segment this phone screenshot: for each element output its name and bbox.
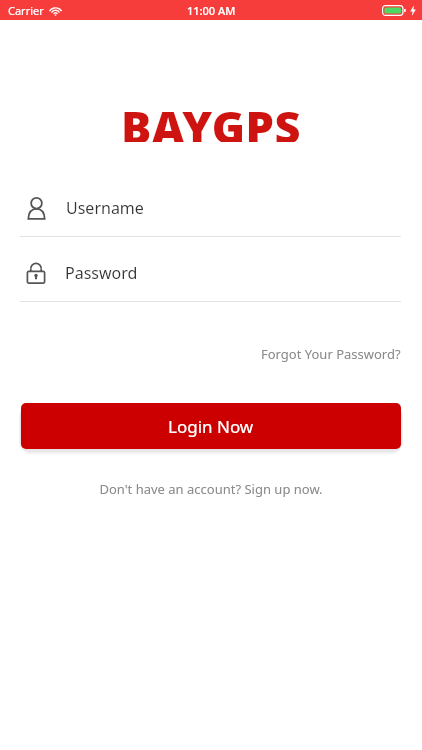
staticText: Forgot Your Password?: [261, 345, 401, 363]
button[interactable]: Don't have an account? Sign up now.: [93, 475, 329, 503]
button[interactable]: Forgot Your Password?: [256, 340, 406, 368]
button[interactable]: Password: [0, 252, 422, 294]
button[interactable]: Login Now: [21, 403, 401, 449]
staticText: Carrier: [8, 3, 44, 18]
staticText: Password: [65, 262, 138, 284]
staticText: Username: [66, 197, 144, 219]
staticText: Login Now: [168, 415, 254, 438]
staticText: BAYGPS: [121, 96, 301, 142]
button[interactable]: Username: [0, 187, 422, 229]
other: Password: [26, 261, 46, 285]
staticText: 11:00 AM: [187, 3, 236, 18]
other: Username: [26, 197, 47, 220]
staticText: Don't have an account? Sign up now.: [99, 480, 323, 498]
